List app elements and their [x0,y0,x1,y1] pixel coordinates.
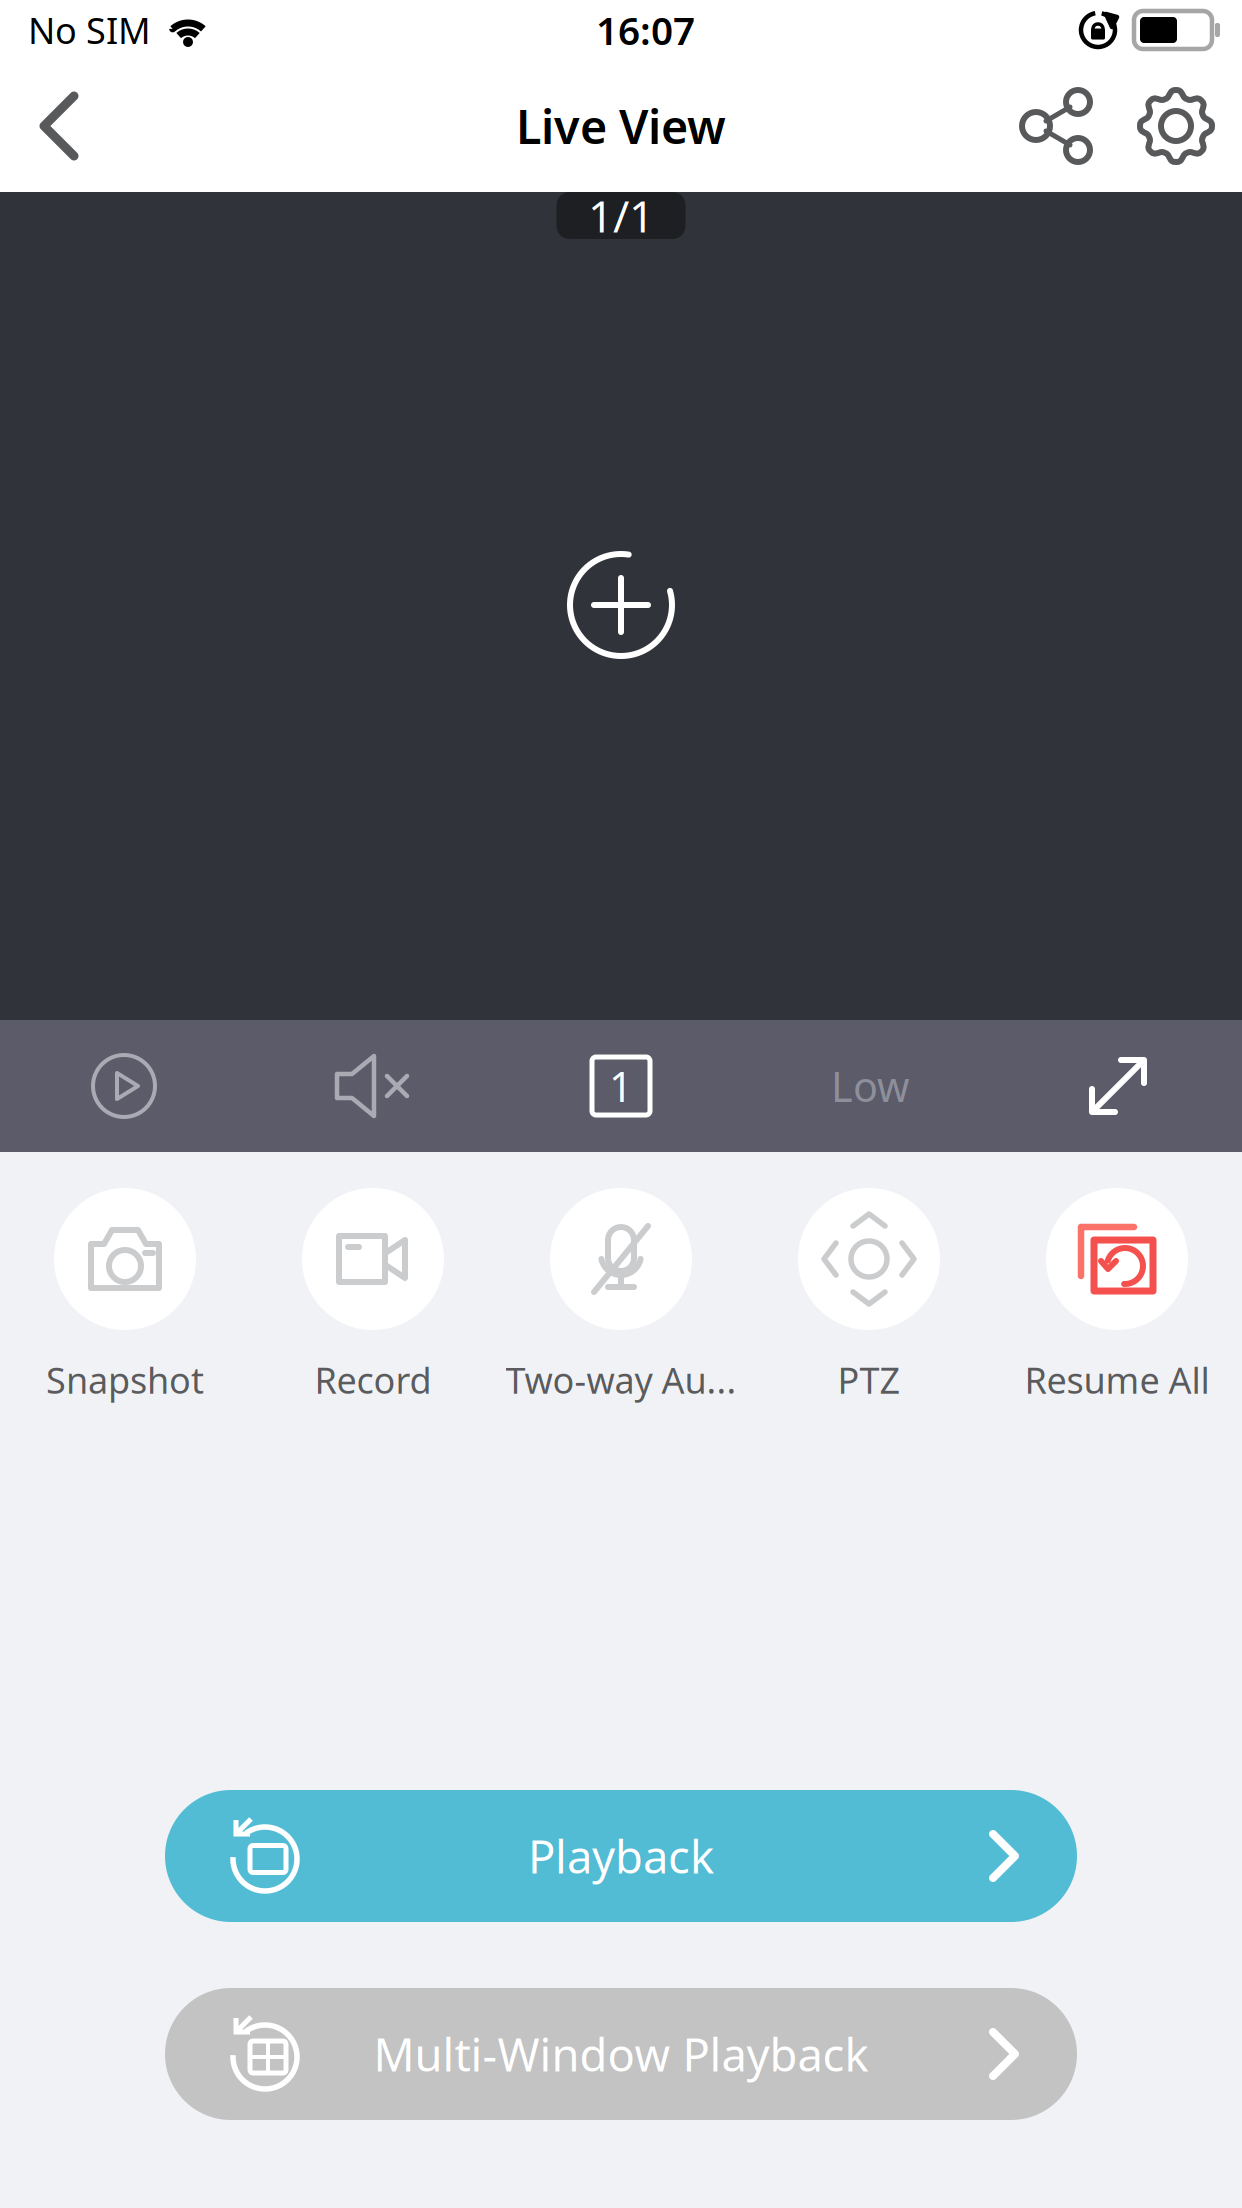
button[interactable]: PTZ [745,1188,993,1404]
button[interactable]: Two-way Au... [497,1188,745,1404]
staticText: 16:07 [596,4,695,56]
staticText: Resume All [1024,1356,1209,1404]
staticText: Playback [528,1826,714,1886]
button[interactable]: Resume All [993,1188,1241,1404]
staticText: Snapshot [46,1356,204,1404]
button[interactable]: Record [249,1188,497,1404]
staticText: No SIM [28,6,151,54]
button[interactable]: Play [0,1020,248,1152]
staticText: Multi-Window Playback [373,2024,868,2084]
button[interactable]: Settings [1114,60,1242,192]
button[interactable]: Window layout [496,1020,746,1152]
staticText: Two-way Au... [505,1356,736,1404]
staticText: 1 [609,1059,633,1113]
button[interactable]: Multi-Window Playback [165,1988,1077,2120]
button[interactable]: Add camera [566,550,676,660]
staticText: Record [314,1356,431,1404]
button[interactable]: Snapshot [1,1188,249,1404]
button[interactable]: Share [998,60,1114,192]
staticText: PTZ [837,1356,900,1404]
button[interactable]: Playback [165,1790,1077,1922]
staticText: 1/1 [588,186,654,245]
staticText: Low [831,1059,909,1113]
button[interactable]: Back [0,60,118,192]
button[interactable]: Unmute [248,1020,496,1152]
staticText: Live View [516,95,726,157]
button[interactable]: Full screen [994,1020,1242,1152]
button[interactable]: Low [746,1020,994,1152]
